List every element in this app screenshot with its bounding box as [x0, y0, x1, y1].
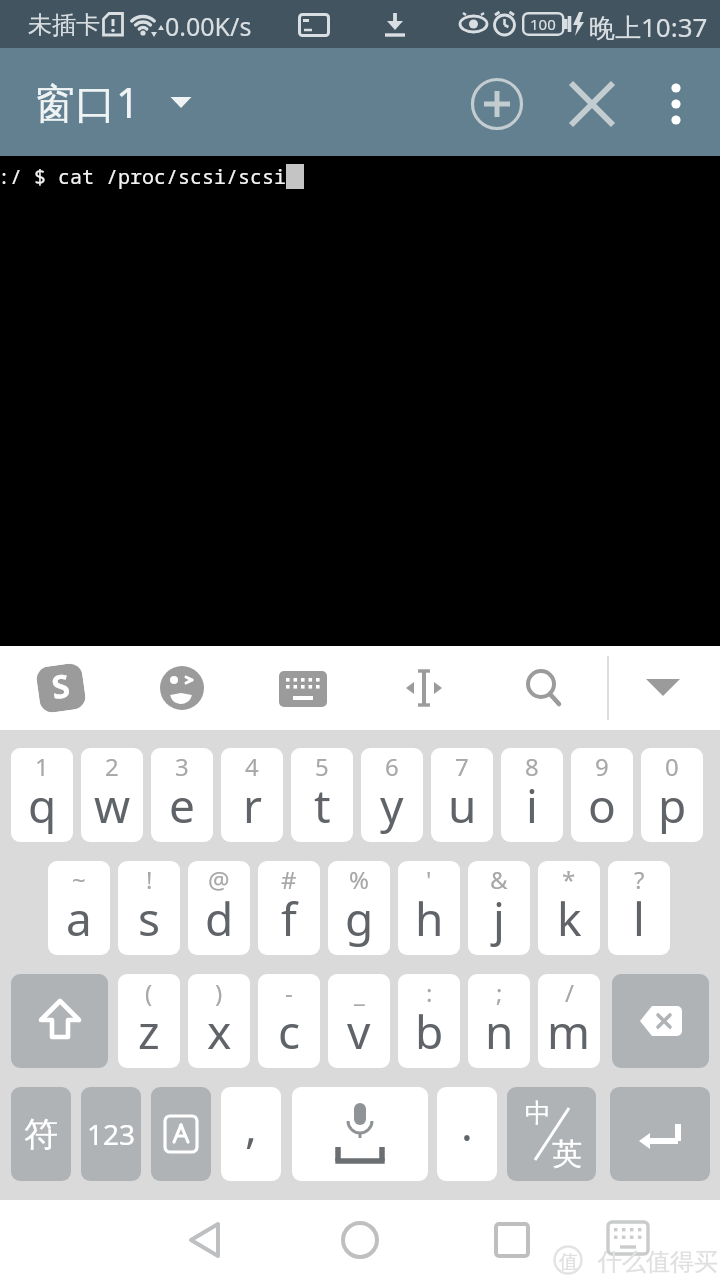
button[interactable]: 8	[501, 748, 563, 842]
staticText: 中	[525, 1097, 551, 1130]
staticText: 什么值得买	[598, 1247, 718, 1277]
button[interactable]: S	[38, 665, 84, 711]
staticText: f	[281, 887, 297, 950]
button[interactable]: &	[468, 861, 530, 955]
button[interactable]	[292, 1087, 428, 1181]
staticText: ;	[496, 976, 503, 1009]
staticText: @	[208, 863, 230, 896]
button[interactable]: #	[258, 861, 320, 955]
button[interactable]: :	[398, 974, 460, 1068]
staticText: m	[547, 1000, 591, 1063]
button[interactable]: 1	[11, 748, 73, 842]
button[interactable]: !	[118, 861, 180, 955]
button[interactable]: 窗口1	[34, 48, 212, 156]
staticText: k	[557, 887, 582, 950]
staticText: 0.00K/s	[165, 9, 252, 43]
staticText: t	[314, 774, 331, 837]
button[interactable]: 7	[431, 748, 493, 842]
button[interactable]: 6	[361, 748, 423, 842]
button[interactable]: ,	[221, 1087, 281, 1181]
staticText: a	[66, 887, 92, 950]
button[interactable]	[175, 1210, 235, 1270]
button[interactable]: 中	[507, 1087, 596, 1181]
button[interactable]: 3	[151, 748, 213, 842]
button[interactable]: 符	[11, 1087, 71, 1181]
staticText: i	[526, 774, 538, 837]
button[interactable]: /	[538, 974, 600, 1068]
button[interactable]: .	[437, 1087, 497, 1181]
button[interactable]	[482, 1210, 542, 1270]
staticText: 9	[595, 750, 609, 783]
button[interactable]: 123	[81, 1087, 141, 1181]
staticText: -	[285, 976, 293, 1009]
staticText: c	[278, 1000, 301, 1063]
button[interactable]	[279, 671, 327, 707]
staticText: &	[490, 863, 508, 896]
staticText: 符	[24, 1113, 58, 1156]
button[interactable]: ~	[48, 861, 110, 955]
staticText: ~	[72, 863, 86, 896]
staticText: 0	[665, 750, 679, 783]
button[interactable]: 4	[221, 748, 283, 842]
button[interactable]	[610, 1087, 710, 1181]
staticText: '	[426, 863, 432, 896]
button[interactable]	[645, 676, 681, 700]
staticText: s	[138, 887, 161, 950]
staticText: u	[448, 774, 477, 837]
staticText: v	[347, 1000, 371, 1063]
button[interactable]: '	[398, 861, 460, 955]
button[interactable]	[400, 668, 448, 708]
button[interactable]	[600, 1214, 656, 1266]
button[interactable]: *	[538, 861, 600, 955]
button[interactable]: 9	[571, 748, 633, 842]
staticText: l	[633, 887, 645, 950]
button[interactable]: %	[328, 861, 390, 955]
button[interactable]	[467, 74, 527, 134]
staticText: !	[146, 863, 153, 896]
button[interactable]	[159, 665, 205, 711]
staticText: %	[349, 863, 369, 896]
staticText: h	[415, 887, 444, 950]
button[interactable]	[330, 1210, 390, 1270]
button[interactable]: ;	[468, 974, 530, 1068]
staticText: e	[169, 774, 195, 837]
staticText: 4	[245, 750, 259, 783]
button[interactable]: )	[188, 974, 250, 1068]
staticText: 100	[530, 14, 556, 34]
button[interactable]: _	[328, 974, 390, 1068]
staticText: r	[243, 774, 262, 837]
button[interactable]: 0	[641, 748, 703, 842]
staticText: 2	[105, 750, 119, 783]
staticText: 7	[455, 750, 469, 783]
staticText: w	[94, 774, 131, 837]
staticText: ,	[245, 1096, 257, 1156]
staticText: .	[461, 1094, 473, 1154]
staticText: *	[562, 863, 576, 896]
button[interactable]	[612, 974, 709, 1068]
staticText: _	[354, 976, 365, 1009]
staticText: 值	[559, 1250, 578, 1274]
staticText: :	[426, 976, 433, 1009]
staticText: ?	[634, 863, 645, 896]
button[interactable]: @	[188, 861, 250, 955]
staticText: 8	[525, 750, 539, 783]
staticText: j	[493, 887, 505, 950]
button[interactable]: 2	[81, 748, 143, 842]
button[interactable]: 5	[291, 748, 353, 842]
button[interactable]: -	[258, 974, 320, 1068]
button[interactable]	[654, 78, 698, 130]
staticText: q	[28, 774, 57, 837]
button[interactable]	[522, 666, 566, 710]
staticText: :/ $ cat /proc/scsi/scsi	[0, 163, 286, 190]
staticText: 1	[35, 750, 49, 783]
button[interactable]	[11, 974, 108, 1068]
button[interactable]	[151, 1087, 211, 1181]
staticText: 晚上10:37	[589, 9, 708, 45]
button[interactable]: (	[118, 974, 180, 1068]
staticText: d	[205, 887, 234, 950]
staticText: 6	[385, 750, 399, 783]
button[interactable]	[564, 76, 620, 132]
staticText: (	[145, 976, 153, 1009]
staticText: S	[49, 664, 73, 709]
button[interactable]: ?	[608, 861, 670, 955]
